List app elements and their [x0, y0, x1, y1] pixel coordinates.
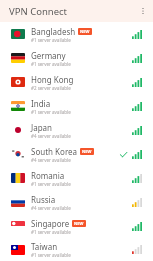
staticText: Hong Kong: [31, 74, 74, 85]
button[interactable]: Russia: [0, 190, 153, 214]
staticText: VPN Connect: [9, 5, 67, 18]
button[interactable]: Germany: [0, 46, 153, 70]
staticText: #4 server available: [31, 133, 71, 139]
staticText: Japan: [31, 122, 53, 133]
staticText: India: [31, 98, 51, 109]
staticText: #1 server available: [31, 61, 71, 67]
staticText: #4 server available: [31, 205, 71, 211]
staticText: #1 server available: [31, 37, 71, 43]
staticText: Russia: [31, 194, 56, 205]
button[interactable]: South Korea: [0, 142, 153, 166]
staticText: Singapore: [31, 218, 70, 229]
button[interactable]: Bangladesh: [0, 22, 153, 46]
button[interactable]: Romania: [0, 166, 153, 190]
staticText: Bangladesh: [31, 26, 76, 37]
staticText: #1 server available: [31, 229, 71, 235]
staticText: #1 server available: [31, 252, 71, 258]
staticText: #1 server available: [31, 109, 71, 115]
button[interactable]: India: [0, 94, 153, 118]
button[interactable]: Hong Kong: [0, 70, 153, 94]
staticText: Germany: [31, 50, 66, 61]
button[interactable]: More options: [133, 1, 153, 21]
staticText: Romania: [31, 170, 65, 181]
staticText: NEW: [80, 29, 90, 34]
staticText: NEW: [82, 149, 92, 154]
button[interactable]: Taiwan: [0, 238, 153, 261]
button[interactable]: Singapore: [0, 214, 153, 238]
staticText: #4 server available: [31, 157, 71, 163]
button[interactable]: Japan: [0, 118, 153, 142]
staticText: South Korea: [31, 146, 78, 157]
staticText: #2 server available: [31, 85, 71, 91]
staticText: #1 server available: [31, 181, 71, 187]
staticText: Taiwan: [31, 241, 58, 252]
staticText: NEW: [74, 221, 84, 226]
